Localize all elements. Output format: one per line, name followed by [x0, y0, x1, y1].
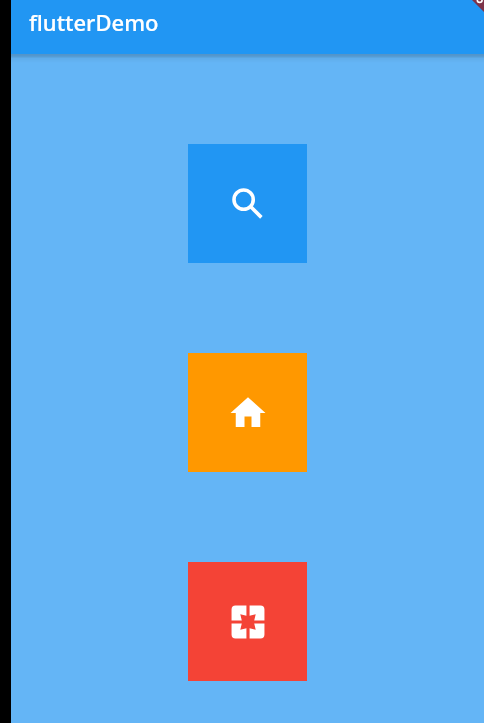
button[interactable]: Search	[188, 144, 307, 263]
other: Debug banner	[444, 0, 484, 40]
staticText: flutterDemo	[29, 7, 159, 37]
button[interactable]: Zoom in map	[188, 562, 307, 681]
button[interactable]: flutterDemo	[11, 0, 484, 54]
button[interactable]: Home	[188, 353, 307, 472]
